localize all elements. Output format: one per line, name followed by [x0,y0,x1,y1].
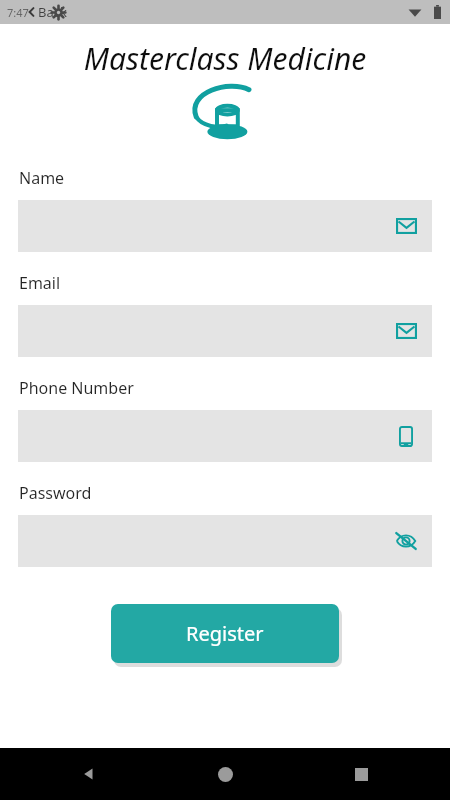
staticText: 7:47 [7,5,29,20]
button[interactable]: Show password [18,515,432,567]
staticText: Masterclass Medicine [0,38,450,79]
button[interactable]: Home [208,757,242,791]
button[interactable]: Recent apps [344,757,378,791]
button[interactable]: Back [72,757,106,791]
staticText: Back [38,3,67,21]
button[interactable]: Register [111,604,339,663]
staticText: Password [19,482,92,504]
button[interactable]: Phone [18,410,432,462]
staticText: Register [186,620,264,647]
button[interactable]: Email [393,318,419,344]
button[interactable]: Show password [393,528,419,554]
button[interactable]: Email [393,213,419,239]
staticText: Phone Number [19,377,134,399]
button[interactable]: Email [18,200,432,252]
button[interactable]: Phone [393,423,419,449]
button[interactable]: Email [18,305,432,357]
staticText: Email [19,272,61,294]
staticText: Name [19,167,65,189]
